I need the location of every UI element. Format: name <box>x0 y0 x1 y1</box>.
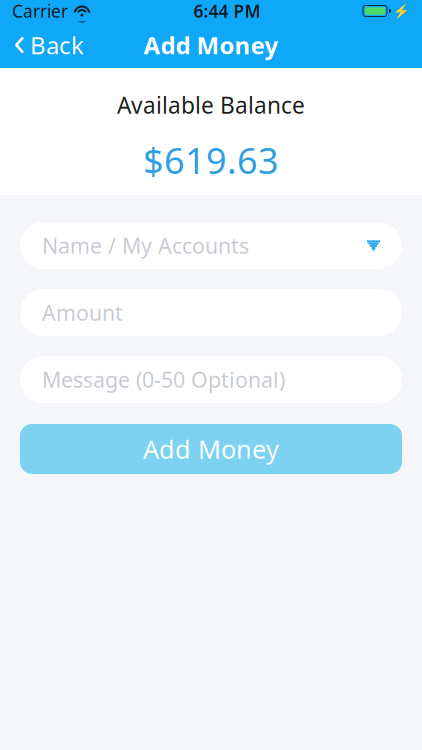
staticText: Add Money <box>143 432 279 466</box>
staticText: Carrier <box>12 0 68 22</box>
staticText: Name / My Accounts <box>42 231 249 260</box>
staticText: Add Money <box>143 29 278 61</box>
staticText: Back <box>30 29 84 61</box>
button[interactable]: Name / My Accounts <box>20 222 402 269</box>
button[interactable]: Message (0-50 Optional) <box>20 356 402 403</box>
staticText: $619.63 <box>143 136 279 184</box>
staticText: 6:44 PM <box>193 0 260 22</box>
staticText: Message (0-50 Optional) <box>42 365 285 394</box>
button[interactable]: Amount <box>20 289 402 336</box>
button[interactable]: Add Money <box>20 424 402 474</box>
button[interactable]: Back <box>0 22 98 68</box>
staticText: ⚡ <box>393 3 410 19</box>
staticText: Amount <box>42 298 123 327</box>
staticText: Available Balance <box>117 90 305 120</box>
